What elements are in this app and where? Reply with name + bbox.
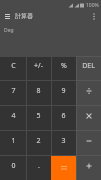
staticText: % xyxy=(61,61,67,71)
button[interactable]: 2 xyxy=(26,130,51,155)
staticText: 0 xyxy=(11,161,16,171)
staticText: . xyxy=(38,161,40,171)
staticText: 8 xyxy=(36,86,41,96)
staticText: 3 xyxy=(61,136,66,146)
button[interactable] xyxy=(76,80,101,105)
button[interactable]: 6 xyxy=(51,105,76,130)
button[interactable]: More options xyxy=(87,9,101,23)
staticText: Deg xyxy=(4,27,14,34)
button[interactable]: +/- xyxy=(26,56,51,80)
button[interactable]: 7 xyxy=(0,80,26,105)
button[interactable]: 1 xyxy=(0,130,26,155)
staticText: DEL xyxy=(82,61,95,71)
button[interactable]: C xyxy=(0,56,26,80)
button[interactable]: DEL xyxy=(76,56,101,80)
button[interactable]: 5 xyxy=(26,105,51,130)
staticText: 計算器 xyxy=(15,12,33,20)
button[interactable] xyxy=(51,155,76,180)
staticText: 7 xyxy=(11,86,16,96)
button[interactable]: 3 xyxy=(51,130,76,155)
button[interactable]: 0 xyxy=(0,155,26,180)
staticText: 100% xyxy=(86,2,99,9)
button[interactable] xyxy=(76,130,101,155)
button[interactable]: 8 xyxy=(26,80,51,105)
button[interactable]: Navigation menu xyxy=(0,9,14,23)
button[interactable]: % xyxy=(51,56,76,80)
staticText: 5 xyxy=(36,111,41,121)
staticText: 4 xyxy=(11,111,16,121)
staticText: +/- xyxy=(34,61,43,71)
button[interactable]: . xyxy=(26,155,51,180)
staticText: 1 xyxy=(11,136,16,146)
staticText: 2 xyxy=(36,136,41,146)
button[interactable] xyxy=(76,155,101,180)
button[interactable] xyxy=(76,105,101,130)
staticText: C xyxy=(11,61,16,71)
staticText: 6 xyxy=(61,111,66,121)
button[interactable]: 4 xyxy=(0,105,26,130)
button[interactable]: 9 xyxy=(51,80,76,105)
staticText: 9 xyxy=(61,86,66,96)
